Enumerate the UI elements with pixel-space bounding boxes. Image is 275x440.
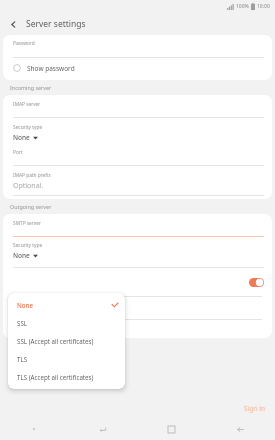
staticText: SMTP server (13, 220, 41, 227)
staticText: Server settings (26, 18, 86, 30)
staticText: None (13, 251, 30, 260)
staticText: Security type (13, 124, 43, 131)
button[interactable]: Show password (3, 58, 272, 78)
staticText: Password (13, 40, 35, 47)
staticText: IMAP path prefix (13, 172, 51, 179)
button[interactable]: Back (0, 13, 26, 35)
staticText: Security type (13, 242, 43, 249)
button[interactable]: None (13, 133, 38, 142)
staticText: Port (13, 149, 23, 156)
staticText: Outgoing server (10, 203, 52, 210)
staticText: Sign in (244, 404, 265, 413)
button[interactable]: Hide keyboard (68, 418, 137, 440)
staticText: SSL (Accept all certificates) (17, 337, 94, 345)
button[interactable]: Recents (137, 418, 206, 440)
staticText: TLS (17, 355, 28, 363)
staticText: Show password (27, 64, 75, 73)
button[interactable]: TLS (Accept all certificates) (8, 368, 125, 386)
staticText: Incoming server (10, 84, 52, 91)
button[interactable]: TLS (8, 350, 125, 368)
staticText: SSL (17, 319, 28, 327)
staticText: None (13, 133, 30, 142)
button[interactable]: Toggle (249, 278, 264, 287)
button[interactable]: Back (206, 418, 275, 440)
button[interactable]: Sign in (234, 401, 275, 416)
staticText: None (17, 301, 34, 309)
staticText: 100% (236, 3, 249, 10)
staticText: TLS (Accept all certificates) (17, 373, 94, 381)
button[interactable]: None (13, 251, 38, 260)
button[interactable]: SSL (8, 314, 125, 332)
staticText: 10:00 (257, 3, 270, 10)
staticText: Optional. (13, 181, 44, 191)
button[interactable]: Show password (3, 320, 272, 336)
button[interactable]: SSL (Accept all certificates) (8, 332, 125, 350)
button[interactable]: None (8, 296, 125, 314)
staticText: IMAP server (13, 101, 41, 108)
